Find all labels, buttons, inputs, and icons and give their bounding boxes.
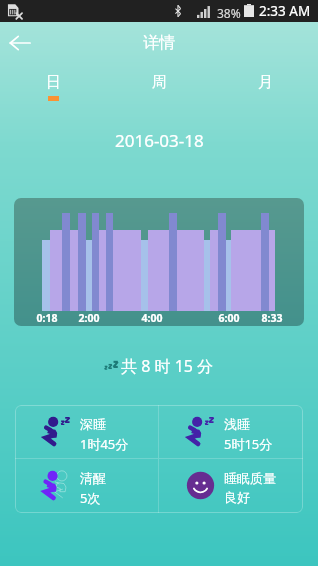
staticText: 0:18 [31, 311, 63, 325]
staticText: 浅睡 [224, 416, 250, 432]
staticText: 月 [258, 73, 273, 92]
button[interactable]: 睡眠质量 [159, 459, 303, 513]
staticText: 2:00 [73, 311, 105, 325]
staticText: 详情 [143, 33, 175, 53]
staticText: 6:00 [213, 311, 245, 325]
button[interactable]: 浅睡 [159, 405, 303, 458]
button[interactable]: Back [0, 24, 40, 62]
staticText: 2016-03-18 [115, 129, 204, 151]
staticText: 深睡 [80, 416, 106, 432]
staticText: 5次 [80, 489, 101, 507]
staticText: 8:33 [256, 311, 288, 325]
button[interactable]: 清醒 [15, 459, 158, 513]
button[interactable]: 周 [106, 70, 212, 104]
staticText: 良好 [224, 489, 250, 505]
staticText: 周 [152, 73, 167, 92]
button[interactable]: 日 [0, 70, 106, 104]
staticText: 5时15分 [224, 435, 273, 453]
staticText: 2:33 AM [259, 2, 311, 20]
staticText: 4:00 [136, 311, 168, 325]
staticText: 38% [217, 5, 241, 21]
staticText: 共 8 时 15 分 [121, 355, 214, 377]
button[interactable]: 深睡 [15, 405, 158, 458]
button[interactable]: 月 [212, 70, 318, 104]
staticText: 日 [46, 73, 61, 92]
staticText: 清醒 [80, 470, 106, 486]
staticText: 睡眠质量 [224, 470, 276, 486]
staticText: 1时45分 [80, 435, 129, 453]
